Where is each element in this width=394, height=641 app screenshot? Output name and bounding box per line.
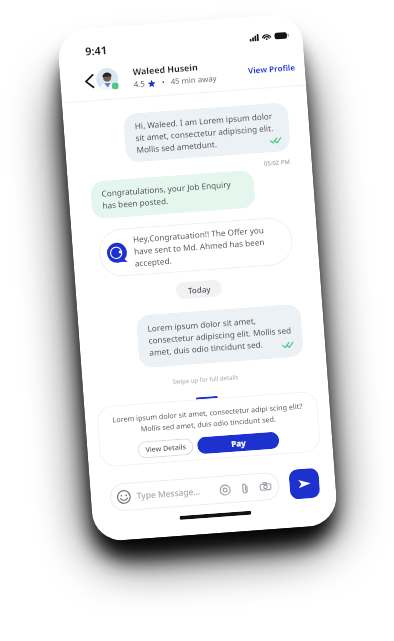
- staticText: Lorem ipsum dolor sit amet, consectetur …: [147, 312, 293, 358]
- other: Location: [219, 484, 231, 496]
- button[interactable]: Back: [83, 74, 97, 89]
- staticText: Pay: [231, 437, 247, 449]
- staticText: Hey,Congratuation!! The Offer you have s…: [133, 223, 284, 268]
- button[interactable]: Congratulations, your Job Enquiry has be…: [90, 170, 256, 219]
- button[interactable]: Type Message...: [109, 472, 280, 512]
- staticText: View Details: [145, 442, 187, 455]
- staticText: Congratulations, your Job Enquiry has be…: [101, 177, 245, 211]
- button[interactable]: Hey,Congratuation!! The Offer you have s…: [97, 216, 294, 278]
- button[interactable]: View Details: [137, 438, 194, 459]
- other: Attach: [239, 483, 251, 494]
- staticText: Today: [187, 283, 211, 296]
- staticText: Waleed Husein: [132, 61, 199, 78]
- button[interactable]: View Profile: [248, 61, 296, 76]
- button[interactable]: Lorem ipsum dolor sit amet, consectetur …: [136, 303, 304, 368]
- staticText: 4.5: [133, 78, 146, 90]
- staticText: Lorem ipsum dolor sit amet, consectetur …: [112, 401, 304, 436]
- staticText: View Profile: [248, 61, 296, 76]
- button[interactable]: Pay: [197, 431, 280, 454]
- staticText: • 45 min away: [155, 73, 218, 88]
- button[interactable]: Today: [175, 279, 222, 300]
- other: Camera: [259, 480, 272, 493]
- staticText: 9:41: [85, 42, 108, 59]
- button[interactable]: Hi, Waleed. I am Lorem ipsum dolor sit a…: [123, 102, 291, 163]
- button[interactable]: Send: [288, 468, 320, 500]
- staticText: Type Message...: [136, 485, 201, 502]
- staticText: Hi, Waleed. I am Lorem ipsum dolor sit a…: [134, 110, 280, 155]
- staticText: 05:02 PM: [264, 158, 290, 168]
- staticText: Swipe up for full details: [172, 373, 239, 386]
